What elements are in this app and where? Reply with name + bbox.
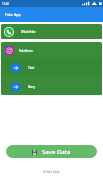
staticText: Story [28,85,35,89]
button[interactable]: Delete Data [0,169,103,175]
button[interactable]: Open [1,76,102,95]
staticText: 13:40 [2,2,9,6]
button[interactable]: Open [1,58,102,76]
staticText: FakeGram [19,49,33,53]
other: Open [11,63,21,73]
button[interactable]: WhatsFake [1,24,102,39]
staticText: Delete Data [43,170,60,174]
button[interactable]: FakeGram [1,42,102,58]
button[interactable]: Save Data [6,145,97,158]
other: Open [11,82,21,92]
staticText: Fake App [5,12,21,17]
staticText: Chat [28,66,35,70]
staticText: WhatsFake [21,30,36,34]
staticText: Save Data [42,148,71,156]
